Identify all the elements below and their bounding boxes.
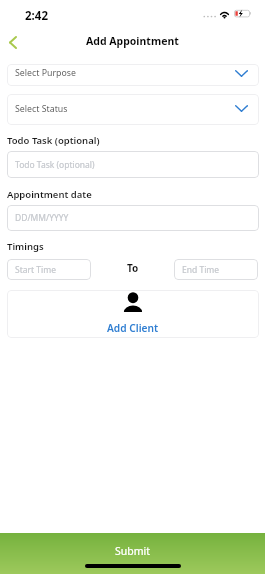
button[interactable]: Select Purpose: [7, 64, 259, 86]
staticText: Select Status: [15, 103, 235, 115]
button[interactable]: Todo Task (optional): [7, 151, 259, 178]
staticText: Todo Task (optional): [7, 134, 100, 147]
button[interactable]: Back: [2, 31, 24, 53]
button[interactable]: Start Time: [7, 259, 91, 280]
staticText: Start Time: [15, 264, 80, 276]
staticText: Submit: [115, 544, 151, 558]
staticText: Appointment date: [7, 188, 92, 201]
button[interactable]: Submit: [0, 533, 265, 574]
staticText: End Time: [182, 264, 247, 276]
staticText: Select Purpose: [15, 67, 235, 79]
button[interactable]: Add Client: [7, 290, 259, 338]
staticText: Add Client: [107, 321, 159, 335]
button[interactable]: DD/MM/YYYY: [7, 205, 259, 231]
staticText: Add Appointment: [86, 34, 179, 48]
staticText: DD/MM/YYYY: [15, 212, 248, 224]
staticText: 2:42: [25, 8, 48, 24]
button[interactable]: Select Status: [7, 94, 259, 125]
staticText: To: [127, 261, 139, 275]
staticText: Timings: [7, 240, 44, 253]
staticText: Todo Task (optional): [15, 159, 248, 171]
button[interactable]: End Time: [174, 259, 258, 280]
